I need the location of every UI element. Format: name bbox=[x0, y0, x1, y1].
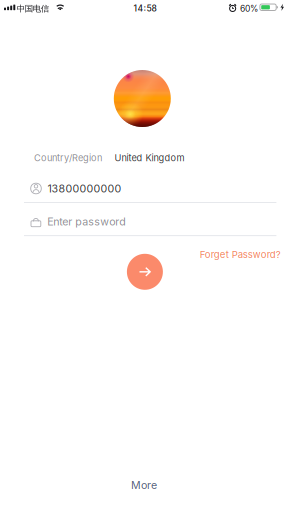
button[interactable]: Sign in bbox=[127, 254, 163, 290]
staticText: 60% bbox=[240, 3, 258, 14]
button[interactable]: 13800000000 bbox=[31, 180, 268, 197]
button[interactable]: Enter password bbox=[31, 213, 268, 230]
staticText: More bbox=[131, 478, 157, 491]
staticText: 13800000000 bbox=[48, 182, 122, 195]
staticText: Enter password bbox=[47, 215, 126, 228]
button[interactable]: Forget Password? bbox=[196, 245, 285, 264]
button[interactable]: More bbox=[118, 476, 170, 494]
staticText: Forget Password? bbox=[200, 249, 281, 260]
button[interactable]: Country/Region bbox=[34, 150, 254, 166]
staticText: 中国电信 bbox=[17, 3, 49, 14]
staticText: Country/Region bbox=[34, 152, 102, 163]
staticText: United Kingdom bbox=[114, 152, 184, 163]
staticText: 14:58 bbox=[133, 3, 156, 14]
